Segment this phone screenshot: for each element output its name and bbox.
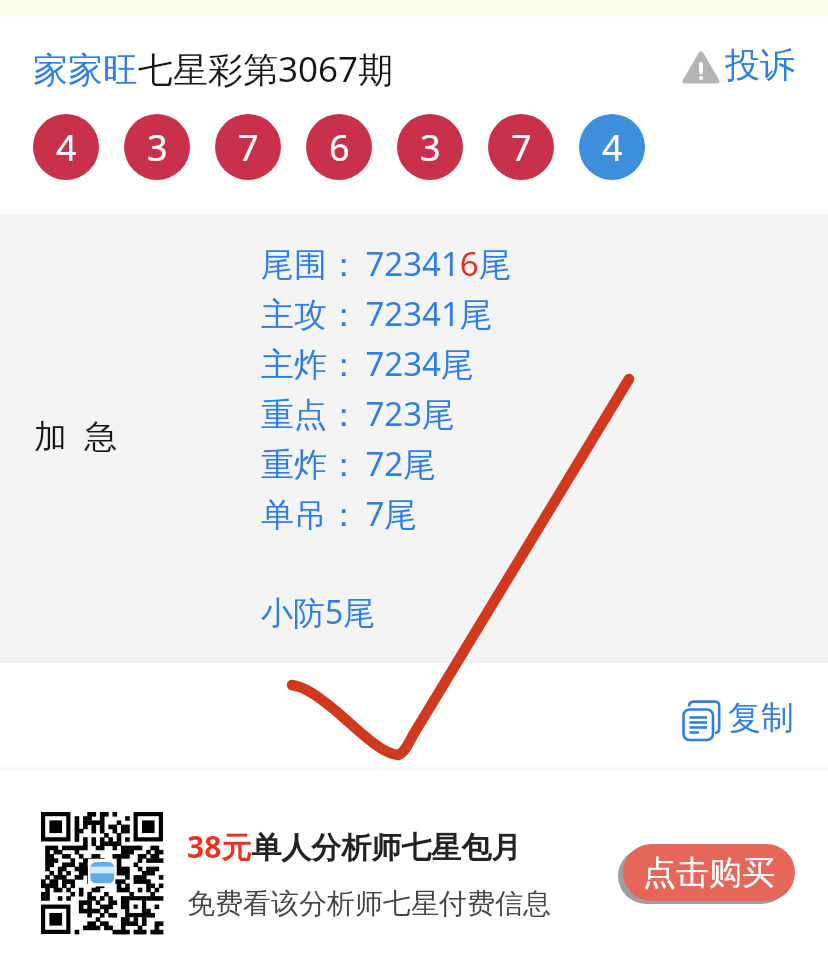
- staticText: 小防5尾: [261, 590, 376, 634]
- button[interactable]: 3: [124, 114, 190, 180]
- button[interactable]: 家家旺七星彩第3067期: [33, 45, 394, 93]
- staticText: 主炸： 7234尾: [261, 341, 474, 386]
- staticText: 复制: [728, 697, 794, 739]
- staticText: 重点： 723尾: [261, 391, 456, 436]
- staticText: 38元单人分析师七星包月: [187, 826, 522, 867]
- staticText: 主攻： 72341尾: [261, 291, 493, 336]
- staticText: 4: [56, 123, 77, 172]
- staticText: 点击购买: [643, 852, 775, 894]
- button[interactable]: 4: [33, 114, 99, 180]
- staticText: 6: [329, 123, 350, 172]
- button[interactable]: 6: [306, 114, 372, 180]
- button[interactable]: 4: [579, 114, 645, 180]
- button[interactable]: 点击购买: [623, 844, 795, 901]
- staticText: 7: [511, 123, 532, 172]
- other: 投诉: [680, 45, 723, 86]
- button[interactable]: 3: [397, 114, 463, 180]
- staticText: 加 急: [34, 413, 118, 458]
- staticText: 3: [147, 123, 168, 172]
- other: 二维码: [41, 812, 163, 934]
- staticText: 尾围： 723416尾: [261, 241, 512, 286]
- button[interactable]: 7: [215, 114, 281, 180]
- staticText: 投诉: [725, 43, 795, 87]
- other: 复制: [682, 695, 722, 741]
- button[interactable]: 投诉: [680, 43, 795, 87]
- staticText: 7: [238, 123, 259, 172]
- staticText: 4: [602, 123, 623, 172]
- staticText: 免费看该分析师七星付费信息: [187, 886, 551, 921]
- button[interactable]: [0, 770, 828, 974]
- button[interactable]: 复制: [682, 695, 794, 741]
- staticText: 单吊： 7尾: [261, 491, 418, 536]
- staticText: 3: [420, 123, 441, 172]
- staticText: 重炸： 72尾: [261, 441, 437, 486]
- staticText: 家家旺七星彩第3067期: [33, 45, 394, 93]
- button[interactable]: 7: [488, 114, 554, 180]
